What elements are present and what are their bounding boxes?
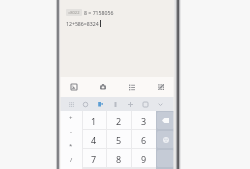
button[interactable]: Option 2 (78, 97, 93, 111)
staticText: 5 (116, 134, 122, 146)
staticText: 2 (116, 115, 122, 127)
button[interactable]: 4 (82, 130, 106, 149)
button[interactable]: 6 (131, 130, 156, 149)
button[interactable]: / (60, 153, 82, 167)
staticText: =8022 (68, 10, 80, 15)
staticText: - (70, 128, 72, 136)
staticText: + (69, 114, 73, 122)
staticText: 6 (141, 134, 147, 146)
staticText: 3 (141, 115, 147, 127)
button[interactable]: Space (156, 168, 175, 169)
button[interactable]: Emoji (156, 130, 175, 149)
staticText: 8 = 7158056 (84, 9, 114, 16)
button[interactable]: Option 4 (108, 97, 123, 111)
button[interactable]: Option 3 (93, 97, 108, 111)
button[interactable]: 1 (82, 111, 106, 130)
button[interactable]: List (117, 77, 146, 97)
button[interactable]: Scan (146, 77, 175, 97)
button[interactable]: * (60, 139, 82, 153)
staticText: * (69, 142, 73, 150)
staticText: / (70, 156, 73, 164)
button[interactable]: Option 7 (153, 97, 168, 111)
button[interactable]: Gallery (60, 77, 88, 97)
button[interactable]: 2 (106, 111, 131, 130)
button[interactable]: Camera (88, 77, 117, 97)
button[interactable]: Option 5 (123, 97, 138, 111)
button[interactable]: 9 (131, 149, 156, 168)
button[interactable]: Option 1 (64, 97, 78, 111)
staticText: 4 (91, 134, 97, 146)
button[interactable]: Option 6 (138, 97, 153, 111)
button[interactable]: 7 (82, 149, 106, 168)
staticText: 12+586=8324 (66, 20, 99, 27)
staticText: 8 (116, 153, 122, 165)
staticText: 1 (91, 115, 97, 127)
button[interactable]: 3 (131, 111, 156, 130)
button[interactable]: Backspace (156, 111, 175, 130)
button[interactable]: 5 (106, 130, 131, 149)
button[interactable]: + (60, 111, 82, 125)
button[interactable]: 8 (106, 149, 131, 168)
button[interactable]: - (60, 125, 82, 139)
staticText: 7 (91, 153, 97, 165)
button[interactable]: Enter (156, 149, 175, 168)
staticText: 9 (141, 153, 147, 165)
